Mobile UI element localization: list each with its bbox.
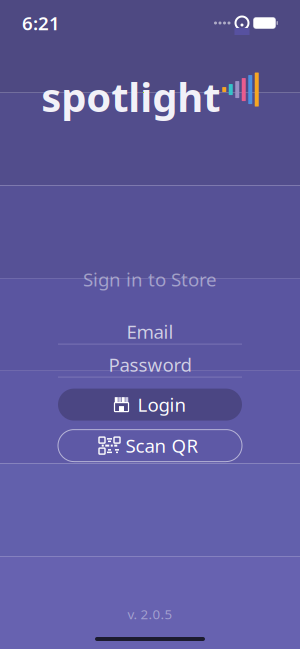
staticText: Login	[137, 392, 186, 417]
staticText: Password	[108, 352, 191, 377]
staticText: v. 2.0.5	[127, 605, 172, 623]
button[interactable]: Login	[58, 389, 242, 421]
staticText: Scan QR	[125, 433, 198, 458]
button[interactable]: Scan QR	[58, 430, 242, 462]
staticText: spotlight	[41, 70, 220, 123]
staticText: Email	[126, 319, 173, 344]
staticText: Sign in to Store	[83, 267, 217, 292]
staticText: 6:21	[22, 11, 60, 35]
